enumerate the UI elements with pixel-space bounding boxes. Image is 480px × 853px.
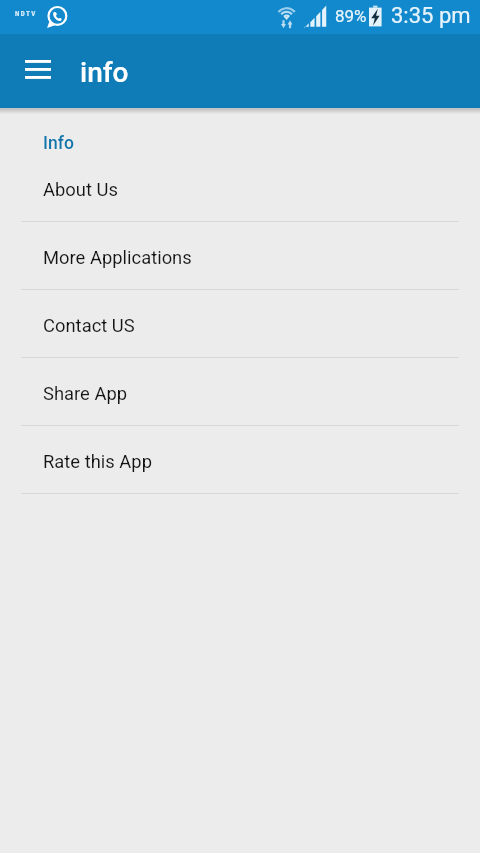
staticText: About Us (43, 179, 118, 201)
staticText: Rate this App (43, 451, 152, 473)
button[interactable]: About Us (0, 154, 480, 222)
button[interactable]: Open navigation menu (12, 34, 63, 108)
button[interactable]: More Applications (0, 222, 480, 290)
staticText: NDTV (15, 10, 37, 18)
staticText: 3:35 pm (391, 3, 471, 29)
staticText: 89% (335, 6, 367, 26)
staticText: Contact US (43, 315, 135, 337)
button[interactable]: Rate this App (0, 426, 480, 494)
staticText: info (80, 56, 129, 89)
staticText: Share App (43, 383, 128, 405)
button[interactable]: Share App (0, 358, 480, 426)
button[interactable]: Contact US (0, 290, 480, 358)
staticText: Info (43, 133, 74, 154)
staticText: More Applications (43, 247, 192, 269)
